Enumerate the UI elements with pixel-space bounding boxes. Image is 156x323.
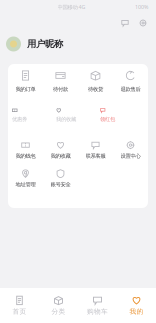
button[interactable]: 优惠券 <box>12 108 56 123</box>
staticText: 中国移动 4G <box>57 3 85 11</box>
staticText: 分类 <box>51 307 65 316</box>
staticText: 我的钱包 <box>15 153 35 159</box>
staticText: 用户昵称 <box>27 38 63 50</box>
staticText: 退款售后 <box>120 86 140 93</box>
staticText: 我的收藏 <box>50 153 70 159</box>
staticText: 我的订单 <box>15 86 35 93</box>
staticText: 我的收藏 <box>56 116 76 123</box>
button[interactable]: 我的收藏 <box>56 108 100 123</box>
staticText: 优惠券 <box>12 116 27 123</box>
staticText: 待付款 <box>53 86 68 93</box>
button[interactable]: 账号安全 <box>43 169 78 188</box>
button[interactable]: 地址管理 <box>8 169 43 188</box>
button[interactable]: 待付款 <box>43 70 78 93</box>
staticText: 我的 <box>129 307 143 316</box>
button[interactable]: 购物车 <box>78 295 117 316</box>
staticText: 购物车 <box>87 307 108 316</box>
button[interactable]: Messages <box>119 17 131 29</box>
button[interactable]: 我的收藏 <box>43 141 78 159</box>
button[interactable]: 领红包 <box>100 108 144 123</box>
button[interactable]: 分类 <box>39 295 78 316</box>
button[interactable]: 首页 <box>0 295 39 316</box>
staticText: 待收货 <box>88 86 103 93</box>
staticText: 账号安全 <box>50 181 70 188</box>
staticText: 首页 <box>12 307 26 316</box>
staticText: 地址管理 <box>15 181 35 188</box>
button[interactable]: 我的订单 <box>8 70 43 93</box>
staticText: 领红包 <box>100 116 115 123</box>
staticText: 设置中心 <box>120 153 140 159</box>
button[interactable]: 我的 <box>117 295 156 316</box>
button[interactable]: 联系客服 <box>78 141 113 159</box>
staticText: 100% <box>135 3 148 11</box>
button[interactable]: 我的钱包 <box>8 141 43 159</box>
button[interactable]: 待收货 <box>78 70 113 93</box>
button[interactable]: 用户昵称 <box>0 32 156 56</box>
staticText: 联系客服 <box>85 153 105 159</box>
button[interactable]: Settings <box>137 17 149 29</box>
button[interactable]: 设置中心 <box>113 141 148 159</box>
button[interactable]: 退款售后 <box>113 70 148 93</box>
